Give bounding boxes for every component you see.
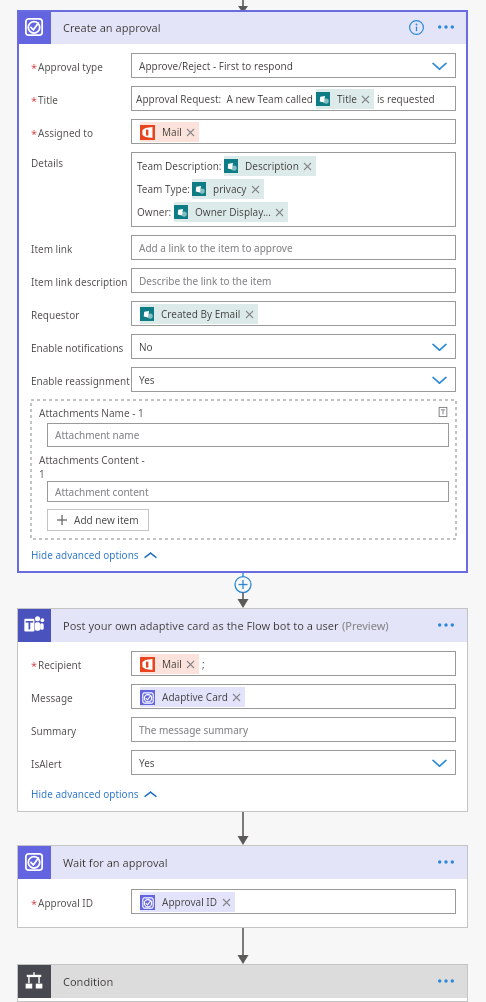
button[interactable]: Switch to text mode xyxy=(437,406,449,418)
staticText: Approval ID xyxy=(162,895,218,909)
staticText: Enable notifications xyxy=(31,341,124,355)
staticText: Post your own adaptive card as the Flow … xyxy=(63,618,339,633)
button[interactable]: Approve/Reject - First to respond xyxy=(131,53,456,78)
button[interactable]: Add new item xyxy=(47,509,149,531)
staticText: Attachments Name - 1 xyxy=(39,406,437,420)
staticText: Assigned to xyxy=(38,126,93,140)
staticText: Create an approval xyxy=(63,20,161,35)
button[interactable]: Describe the link to the item xyxy=(131,268,456,293)
button[interactable]: Information xyxy=(406,17,426,37)
staticText: Wait for an approval xyxy=(63,855,168,870)
staticText: Created By Email xyxy=(161,307,241,321)
button[interactable]: Team Description: xyxy=(131,152,456,227)
staticText: Hide advanced options xyxy=(31,787,139,801)
staticText: Message xyxy=(31,691,73,705)
button[interactable]: Title xyxy=(316,89,374,109)
staticText: Condition xyxy=(63,974,114,989)
staticText: Approval ID xyxy=(38,896,94,910)
staticText: The message summary xyxy=(139,723,249,737)
staticText: Team Description: xyxy=(137,159,222,173)
staticText: * xyxy=(31,126,38,141)
staticText: Requestor xyxy=(31,308,80,322)
staticText: Attachment name xyxy=(55,428,140,442)
button[interactable]: Mail xyxy=(140,122,199,142)
staticText: No xyxy=(139,340,433,354)
button[interactable]: Owner Display... xyxy=(174,202,288,222)
staticText: 1 xyxy=(39,467,45,481)
button[interactable]: Adaptive Card xyxy=(131,684,456,709)
button[interactable]: privacy xyxy=(192,179,264,199)
button[interactable]: Approval Request: A new Team called xyxy=(131,86,456,111)
button[interactable]: Hide advanced options xyxy=(31,784,156,804)
button[interactable]: More commands xyxy=(434,615,458,635)
staticText: Adaptive Card xyxy=(162,690,228,704)
staticText: privacy xyxy=(213,182,247,196)
staticText: Description xyxy=(245,159,299,173)
button[interactable]: Create an approval xyxy=(17,10,51,44)
staticText: Title xyxy=(337,92,357,106)
staticText: Add a link to the item to approve xyxy=(139,241,293,255)
staticText: Details xyxy=(31,156,64,170)
button[interactable]: More commands xyxy=(434,852,458,872)
button[interactable]: Mail xyxy=(131,119,456,144)
staticText: Mail xyxy=(162,125,182,139)
button[interactable]: Approval ID xyxy=(140,892,235,912)
staticText: Enable reassignment xyxy=(31,374,130,388)
button[interactable]: Attachment content xyxy=(47,481,449,502)
staticText: * xyxy=(31,93,38,108)
staticText: Approve/Reject - First to respond xyxy=(139,59,433,73)
staticText: Summary xyxy=(31,724,77,738)
staticText: Owner: xyxy=(137,205,172,219)
staticText: ; xyxy=(202,657,205,671)
button[interactable]: Add a link to the item to approve xyxy=(131,235,456,260)
staticText: Approval Request: A new Team called xyxy=(136,92,316,106)
button[interactable]: The message summary xyxy=(131,717,456,742)
button[interactable]: Yes xyxy=(131,367,456,392)
staticText: Yes xyxy=(139,373,433,387)
staticText: Item link description xyxy=(31,275,128,289)
button[interactable]: Post your own adaptive card as the Flow … xyxy=(17,608,51,642)
staticText: Attachment content xyxy=(55,485,149,499)
button[interactable]: Approval ID xyxy=(131,889,456,914)
button[interactable]: Attachment name xyxy=(47,423,449,447)
button[interactable]: Created By Email xyxy=(131,301,456,326)
staticText: Describe the link to the item xyxy=(139,274,272,288)
button[interactable]: Description xyxy=(224,156,316,176)
staticText: Approval type xyxy=(38,60,103,74)
staticText: Title xyxy=(38,93,58,107)
button[interactable]: Condition xyxy=(17,964,51,998)
staticText: Add new item xyxy=(74,513,139,527)
button[interactable]: Created By Email xyxy=(140,304,258,324)
staticText: Item link xyxy=(31,242,73,256)
staticText: (Preview) xyxy=(342,618,389,633)
staticText: Mail xyxy=(162,657,182,671)
staticText: * xyxy=(31,896,38,911)
button[interactable]: Adaptive Card xyxy=(140,687,245,707)
button[interactable]: Mail xyxy=(140,654,199,674)
staticText: is requested xyxy=(377,92,435,106)
button[interactable]: Yes xyxy=(131,750,456,775)
staticText: Owner Display... xyxy=(195,205,271,219)
staticText: IsAlert xyxy=(31,757,62,771)
button[interactable]: No xyxy=(131,334,456,359)
staticText: Team Type: xyxy=(137,182,190,196)
staticText: Attachments Content - xyxy=(39,453,145,467)
button[interactable] xyxy=(131,651,456,676)
button[interactable]: More commands xyxy=(434,971,458,991)
button[interactable]: More commands xyxy=(434,17,458,37)
staticText: Yes xyxy=(139,756,433,770)
button[interactable]: Hide advanced options xyxy=(31,545,156,565)
staticText: Hide advanced options xyxy=(31,548,139,562)
staticText: * xyxy=(31,658,38,673)
button[interactable]: Wait for an approval xyxy=(17,845,51,879)
staticText: Recipient xyxy=(38,658,82,672)
staticText: * xyxy=(31,60,38,75)
